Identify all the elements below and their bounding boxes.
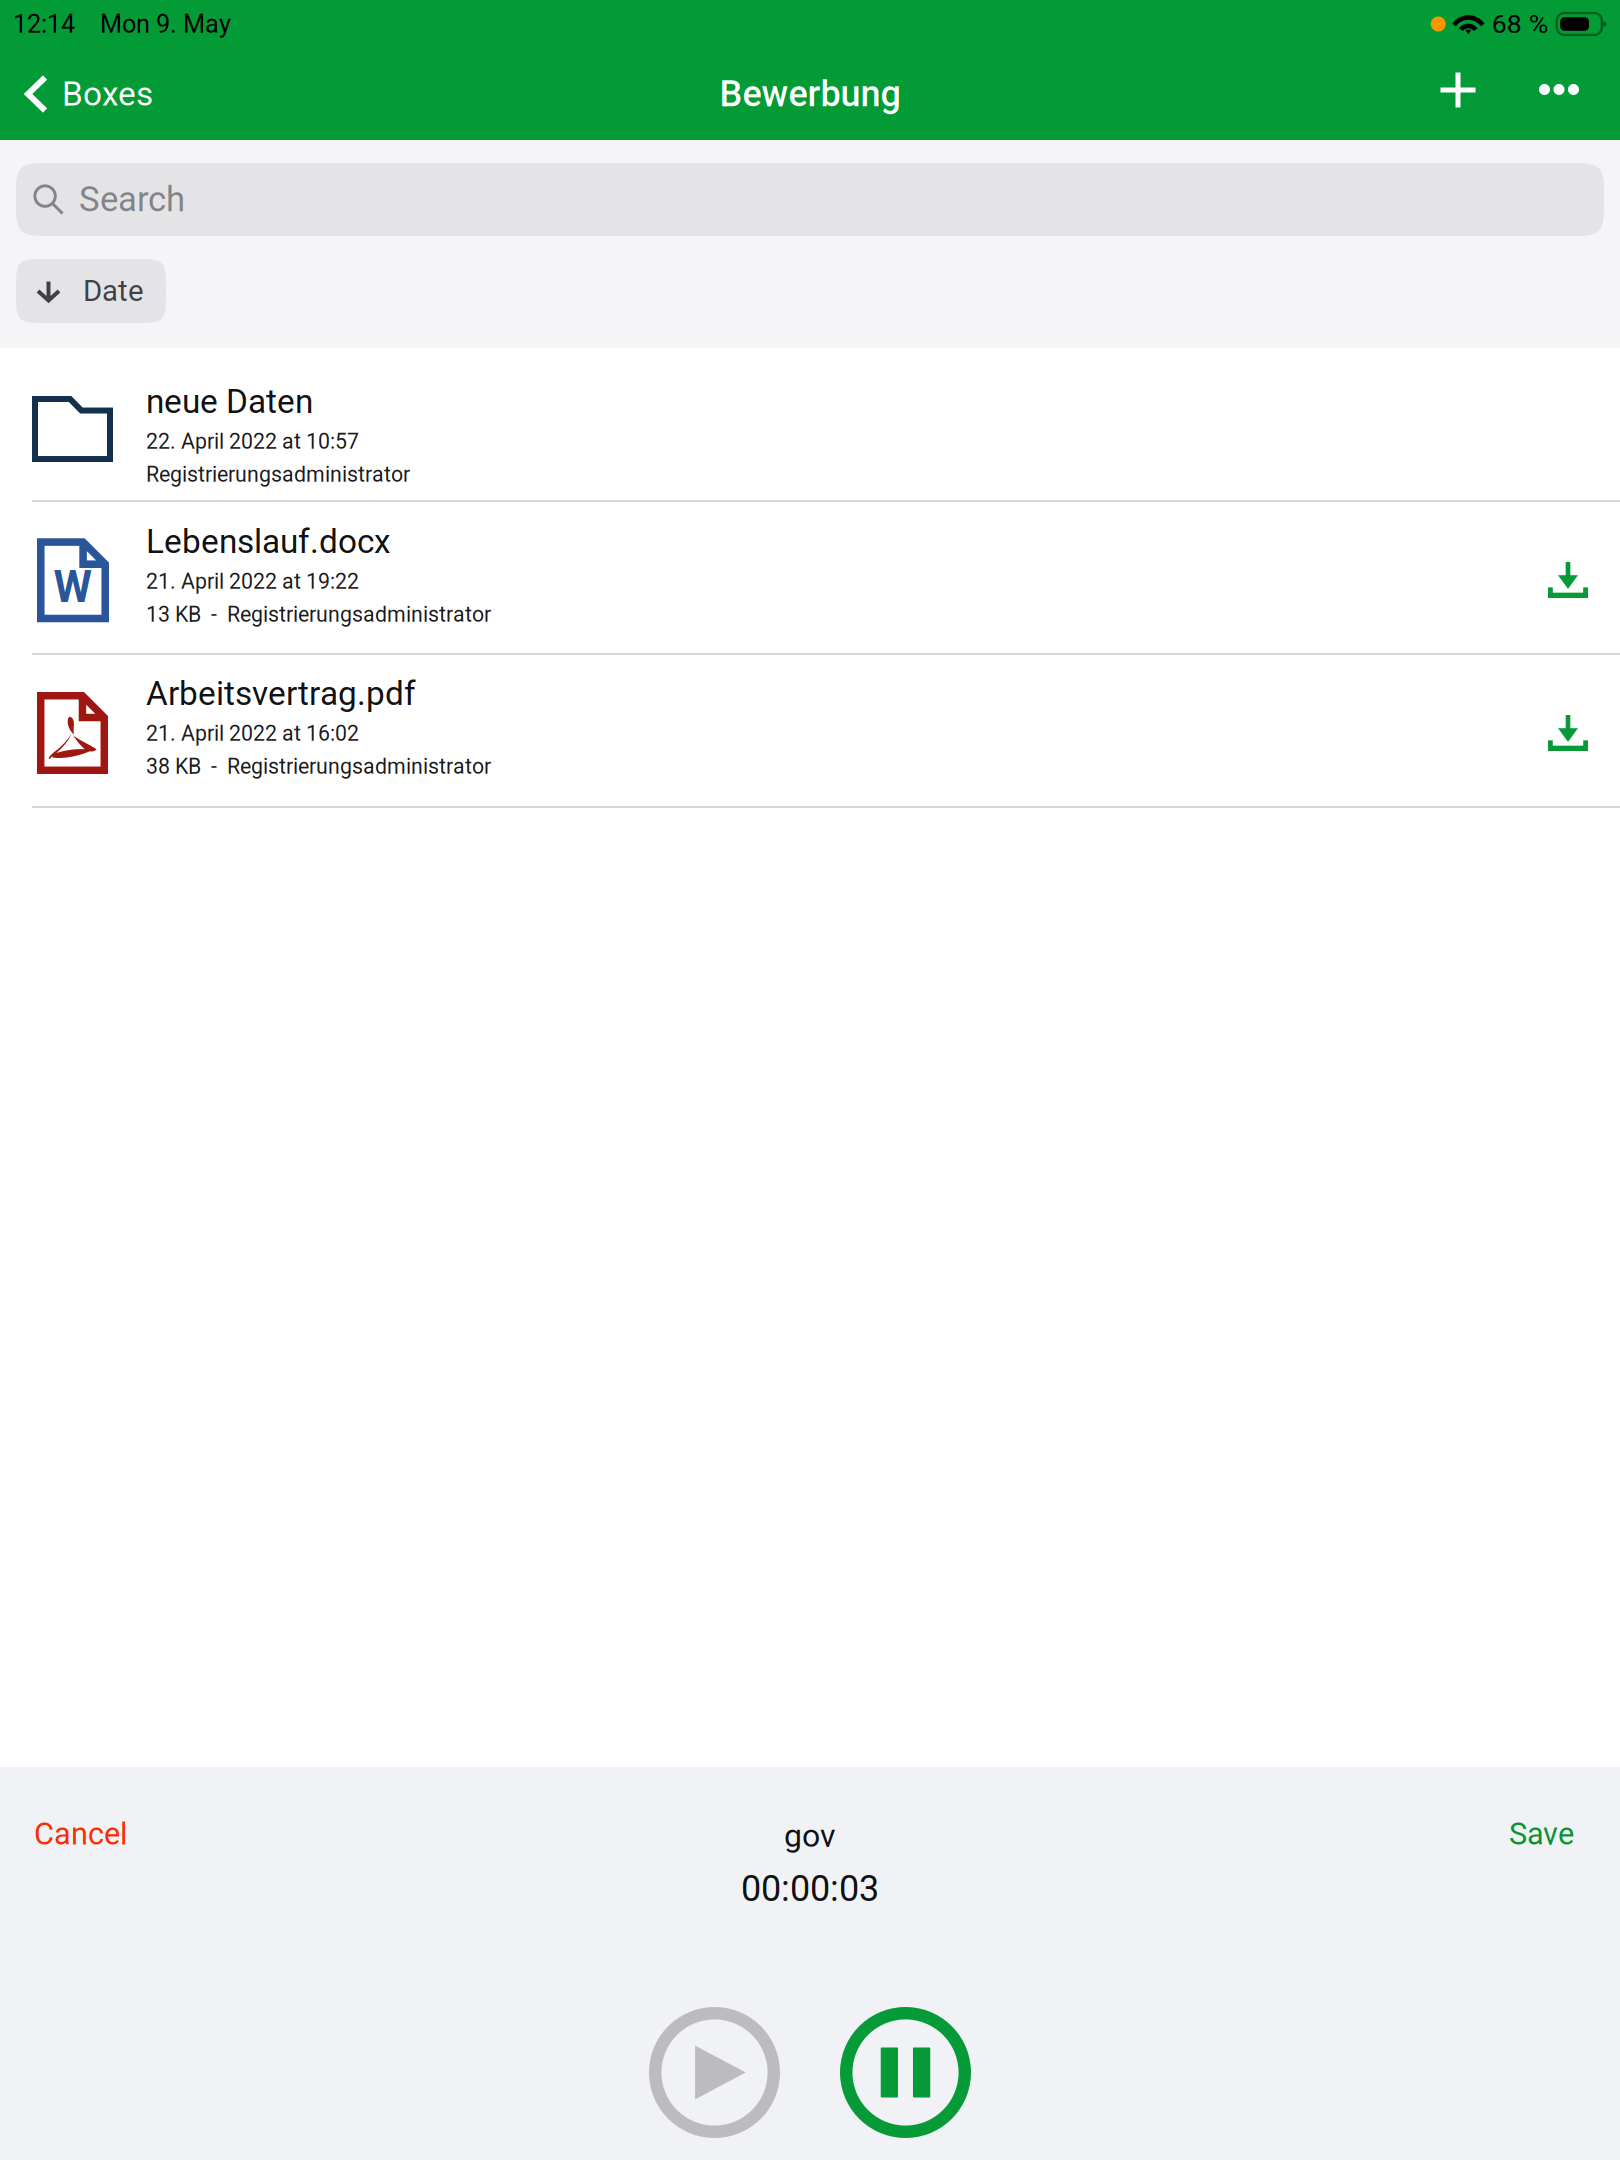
button[interactable]: Boxes — [0, 48, 169, 140]
staticText: 00:00:03 — [741, 1867, 879, 1910]
staticText: Arbeitsvertrag.pdf — [146, 674, 416, 713]
button[interactable]: Play — [649, 2007, 780, 2138]
button[interactable]: Save — [1483, 1804, 1620, 1864]
staticText: W — [53, 561, 92, 613]
staticText: 22. April 2022 at 10:57 — [146, 429, 359, 454]
button[interactable]: Add — [1417, 48, 1519, 140]
staticText: Mon 9. May — [100, 9, 231, 39]
button[interactable]: Search — [16, 163, 1604, 236]
staticText: Registrierungsadministrator — [146, 462, 410, 487]
button[interactable]: More — [1519, 48, 1599, 140]
staticText: neue Daten — [146, 382, 313, 421]
staticText: 12:14 — [13, 9, 75, 39]
staticText: 21. April 2022 at 16:02 — [146, 721, 359, 746]
staticText: Cancel — [34, 1816, 127, 1852]
staticText: Bewerbung — [719, 73, 900, 115]
button[interactable]: neue Daten — [0, 348, 1620, 502]
staticText: Search — [79, 179, 185, 220]
staticText: 13 KB - Registrierungsadministrator — [146, 602, 491, 627]
staticText: Save — [1509, 1816, 1574, 1852]
staticText: 21. April 2022 at 19:22 — [146, 569, 359, 594]
staticText: gov — [784, 1817, 836, 1854]
staticText: 38 KB - Registrierungsadministrator — [146, 754, 491, 779]
button[interactable]: Cancel — [0, 1804, 153, 1864]
button[interactable]: Pause — [840, 2007, 971, 2138]
staticText: Date — [83, 274, 144, 308]
button[interactable]: Date — [16, 259, 166, 323]
staticText: Lebenslauf.docx — [146, 522, 391, 561]
button[interactable]: Arbeitsvertrag.pdf — [0, 655, 1620, 808]
staticText: 68 % — [1492, 8, 1549, 40]
button[interactable]: W — [0, 502, 1620, 655]
staticText: Boxes — [62, 74, 153, 114]
